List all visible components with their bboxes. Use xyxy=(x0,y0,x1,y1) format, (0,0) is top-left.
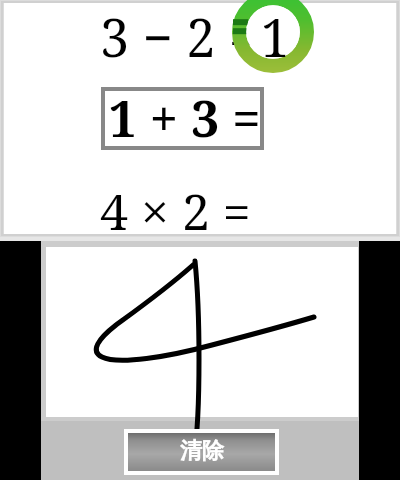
button[interactable]: Handwriting input area xyxy=(46,247,358,417)
staticText: 1 + 3 = xyxy=(107,84,262,147)
staticText: 1 xyxy=(255,1,295,65)
staticText: 4 × 2 = xyxy=(100,177,280,237)
button[interactable]: 1 + 3 = xyxy=(101,87,264,150)
button[interactable]: 清除 xyxy=(124,429,279,475)
staticText: 清除 xyxy=(180,437,224,465)
staticText: 3 − 2 = xyxy=(100,1,280,67)
